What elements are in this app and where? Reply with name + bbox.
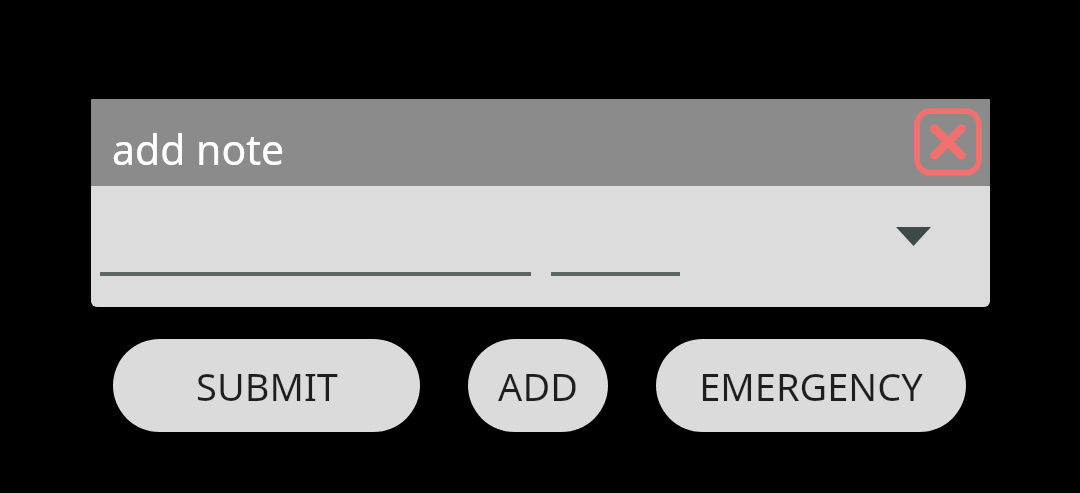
button[interactable]: Close [913, 107, 983, 177]
button[interactable]: ADD [468, 339, 608, 432]
staticText: ADD [498, 360, 578, 412]
button[interactable]: EMERGENCY [656, 339, 966, 432]
button[interactable]: Open dropdown [886, 216, 941, 256]
staticText: EMERGENCY [699, 360, 923, 412]
staticText: SUBMIT [196, 360, 338, 412]
staticText: add note [112, 121, 285, 177]
button[interactable]: SUBMIT [113, 339, 420, 432]
